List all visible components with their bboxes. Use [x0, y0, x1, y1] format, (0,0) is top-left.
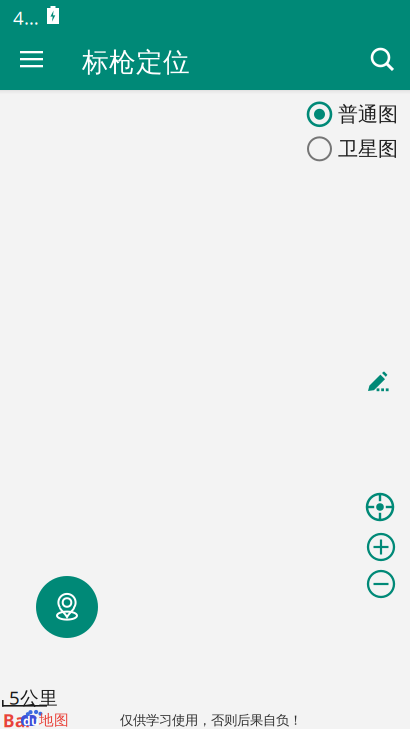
button[interactable]: Draw on map: [367, 372, 405, 408]
button[interactable]: Place marker: [36, 576, 98, 638]
staticText: 卫星图: [338, 137, 398, 161]
button[interactable]: My location: [367, 494, 393, 520]
button[interactable]: Menu: [20, 51, 67, 92]
button[interactable]: 普通图: [308, 100, 398, 129]
staticText: 仅供学习使用，否则后果自负！: [120, 712, 302, 728]
staticText: Bai: [3, 709, 30, 729]
button[interactable]: Search: [371, 48, 410, 94]
staticText: 标枪定位: [82, 46, 190, 79]
staticText: 4…: [13, 5, 39, 30]
button[interactable]: 卫星图: [308, 135, 398, 163]
staticText: du: [23, 713, 39, 729]
button[interactable]: Zoom out: [367, 570, 395, 598]
staticText: 5公里: [9, 685, 58, 710]
staticText: 地图: [39, 711, 69, 729]
staticText: 普通图: [338, 102, 398, 127]
button[interactable]: Zoom in: [367, 533, 395, 561]
